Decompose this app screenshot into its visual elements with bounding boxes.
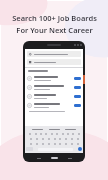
button[interactable]: Apply bbox=[74, 104, 81, 107]
button[interactable]: Key bbox=[53, 137, 56, 140]
button[interactable]: Key bbox=[70, 142, 73, 145]
button[interactable]: Key bbox=[28, 132, 31, 135]
button[interactable]: Suggestion bbox=[49, 129, 60, 130]
button[interactable]: Apply bbox=[74, 86, 81, 89]
button[interactable]: Key bbox=[35, 137, 38, 140]
button[interactable]: Key bbox=[77, 132, 80, 135]
button[interactable]: Search bbox=[78, 147, 82, 151]
button[interactable]: Search location bbox=[27, 59, 81, 65]
staticText: For Your Next Career bbox=[16, 25, 93, 35]
button[interactable]: Key bbox=[47, 142, 50, 145]
button[interactable]: Key bbox=[64, 137, 67, 140]
button[interactable]: Key bbox=[64, 142, 67, 145]
button[interactable]: Key bbox=[58, 137, 61, 140]
button[interactable]: Key bbox=[39, 132, 42, 135]
button[interactable]: Search job title bbox=[27, 51, 81, 57]
button[interactable]: Suggestion bbox=[65, 129, 76, 130]
button[interactable]: Suggestion bbox=[32, 129, 43, 130]
button[interactable]: Key bbox=[55, 132, 58, 135]
button[interactable]: Key bbox=[58, 142, 61, 145]
button[interactable]: Key bbox=[35, 142, 38, 145]
button[interactable]: Apply bbox=[25, 101, 83, 110]
button[interactable]: Key bbox=[44, 132, 47, 135]
button[interactable]: Key bbox=[41, 142, 44, 145]
button[interactable]: Apply bbox=[74, 95, 81, 98]
button[interactable]: Key bbox=[34, 132, 37, 135]
button[interactable]: Key bbox=[66, 132, 69, 135]
button[interactable]: Key bbox=[50, 132, 53, 135]
button[interactable]: Key bbox=[61, 132, 64, 135]
button[interactable]: Apply bbox=[74, 77, 81, 80]
button[interactable]: Key bbox=[76, 142, 79, 145]
button[interactable]: Key bbox=[41, 137, 44, 140]
button[interactable]: Key bbox=[53, 142, 56, 145]
button[interactable]: Key bbox=[76, 137, 79, 140]
button[interactable]: Key bbox=[29, 142, 32, 145]
button[interactable]: Apply bbox=[25, 83, 83, 92]
button[interactable]: Apply bbox=[25, 92, 83, 101]
button[interactable]: Apply bbox=[25, 74, 83, 83]
staticText: Search 100+ Job Boards bbox=[12, 13, 97, 23]
button[interactable]: Key bbox=[71, 132, 74, 135]
button[interactable]: Key bbox=[70, 137, 73, 140]
button[interactable]: Key bbox=[29, 137, 32, 140]
button[interactable]: Key bbox=[47, 137, 50, 140]
